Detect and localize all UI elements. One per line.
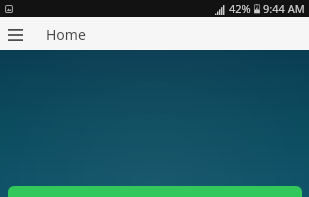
button[interactable]: Open navigation menu (2, 21, 28, 47)
staticText: Home (46, 25, 86, 44)
staticText: 42% (229, 1, 251, 16)
staticText: 9:44 AM (263, 1, 305, 16)
button[interactable]: Primary action (8, 186, 302, 197)
